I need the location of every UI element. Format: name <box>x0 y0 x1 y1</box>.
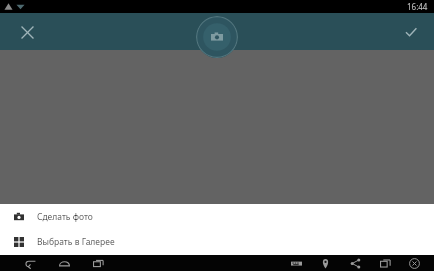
staticText: 16:44 <box>407 1 428 12</box>
button[interactable]: Screenshot <box>377 255 393 271</box>
button[interactable]: Back <box>22 255 38 271</box>
staticText: Сделать фото <box>37 211 93 223</box>
button[interactable]: Done <box>398 19 424 45</box>
button[interactable]: Hide <box>406 255 422 271</box>
button[interactable]: Выбрать в Галерее <box>0 229 434 254</box>
button[interactable]: Share <box>347 255 363 271</box>
button[interactable]: Change photo <box>196 16 238 58</box>
staticText: Выбрать в Галерее <box>37 236 115 248</box>
button[interactable]: Recents <box>90 255 106 271</box>
button[interactable]: Home <box>56 255 72 271</box>
button[interactable]: Location <box>317 255 333 271</box>
staticText: periscope-pc.ru <box>306 240 399 256</box>
button[interactable]: Keyboard <box>288 255 304 271</box>
button[interactable]: Close <box>14 19 40 45</box>
button[interactable]: Сделать фото <box>0 204 434 229</box>
